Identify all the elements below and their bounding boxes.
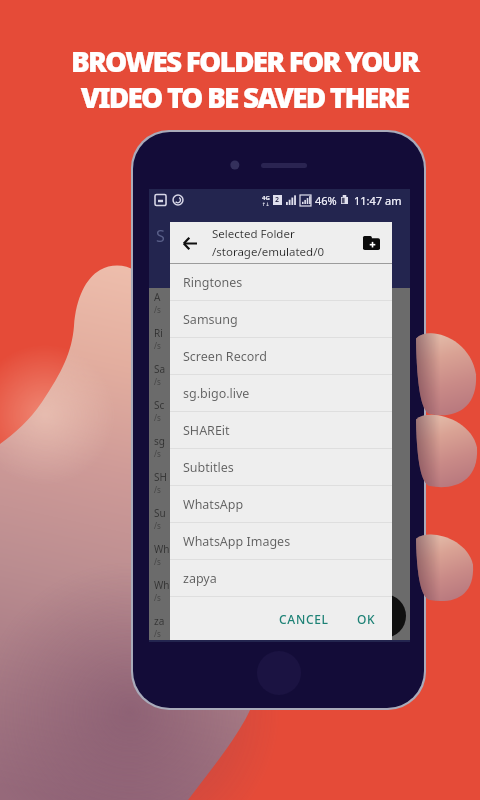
staticText: WhatsApp Images [183,533,291,550]
button[interactable]: Subtitles [170,449,392,486]
staticText: Samsung [183,311,238,328]
staticText: Subtitles [183,459,234,476]
button[interactable]: WhatsApp [170,486,392,523]
staticText: SH [154,470,167,484]
button[interactable]: Samsung [170,301,392,338]
button[interactable]: WhatsApp Images [170,523,392,560]
button[interactable]: CANCEL [271,605,337,633]
staticText: A [154,290,161,304]
staticText: WhatsApp [183,496,244,513]
button[interactable]: Ringtones [170,264,392,301]
staticText: Su [154,506,166,520]
button[interactable]: sg.bigo.live [170,375,392,412]
staticText: sg [154,434,165,448]
button[interactable]: Create new folder [360,232,382,254]
button[interactable]: zapya [170,560,392,597]
button[interactable]: OK [349,605,384,633]
staticText: SHAREit [183,422,230,439]
staticText: Ri [154,326,163,340]
staticText: Wh [154,542,170,556]
button[interactable]: Screen Record [170,338,392,375]
staticText: S [156,225,165,247]
staticText: OK [357,611,376,627]
staticText: BROWES FOLDER FOR YOUR VIDEO TO BE SAVED… [9,42,480,116]
staticText: Wh [154,578,170,592]
staticText: /storage/emulated/0 [212,244,325,260]
staticText: /s [154,448,161,459]
button[interactable]: Back [178,231,202,255]
staticText: /s [154,592,161,603]
staticText: /s [154,628,161,639]
staticText: Sc [154,398,165,412]
staticText: /s [154,304,161,315]
staticText: /s [154,376,161,387]
staticText: /s [154,340,161,351]
staticText: Sa [154,362,166,376]
staticText: /s [154,520,161,531]
staticText: Selected Folder [212,226,295,242]
staticText: CANCEL [279,611,329,627]
staticText: zapya [183,570,217,587]
staticText: Ringtones [183,274,243,291]
staticText: 11:47 am [354,193,402,208]
staticText: 46% [315,193,337,208]
staticText: Screen Record [183,348,267,365]
staticText: 4G [262,194,270,202]
staticText: ↑↓ [262,202,270,207]
staticText: 2 [275,195,280,205]
button[interactable]: SHAREit [170,412,392,449]
staticText: za [154,614,165,628]
button[interactable]: Add [362,594,406,638]
staticText: sg.bigo.live [183,385,250,402]
staticText: /s [154,412,161,423]
staticText: /s [154,556,161,567]
staticText: /s [154,484,161,495]
